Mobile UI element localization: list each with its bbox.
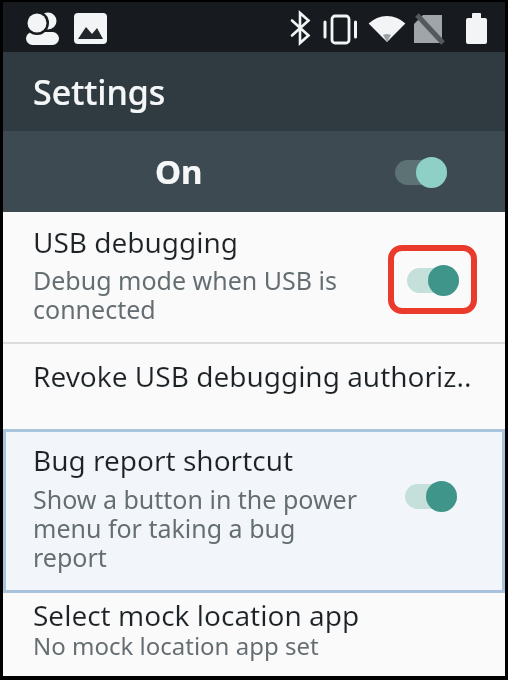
button[interactable]: On bbox=[3, 131, 505, 212]
staticText: Debug mode when USB is connected bbox=[33, 263, 337, 326]
staticText: On bbox=[155, 149, 203, 194]
button[interactable]: Bug report shortcut bbox=[3, 429, 505, 593]
staticText: Select mock location app bbox=[33, 596, 360, 634]
button[interactable] bbox=[395, 156, 447, 188]
button[interactable]: Settings bbox=[3, 52, 505, 131]
staticText: Revoke USB debugging authoriz.. bbox=[33, 357, 472, 395]
button[interactable] bbox=[388, 245, 477, 314]
button[interactable]: Select mock location app bbox=[3, 593, 505, 676]
staticText: No mock location app set bbox=[33, 629, 319, 662]
button[interactable]: USB debugging bbox=[3, 212, 505, 342]
staticText: Settings bbox=[33, 69, 166, 115]
button[interactable] bbox=[407, 264, 459, 296]
staticText: Show a button in the power menu for taki… bbox=[33, 482, 357, 574]
button[interactable] bbox=[405, 480, 457, 512]
staticText: Bug report shortcut bbox=[33, 441, 294, 479]
button[interactable]: Revoke USB debugging authoriz.. bbox=[3, 344, 505, 429]
staticText: USB debugging bbox=[33, 223, 239, 261]
